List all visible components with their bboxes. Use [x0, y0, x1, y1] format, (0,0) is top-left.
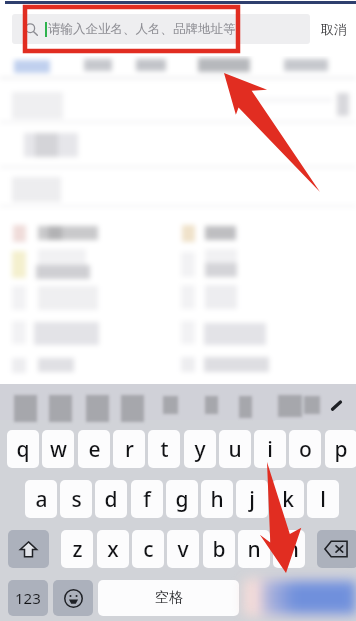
button[interactable]: 空格 — [98, 580, 239, 616]
button[interactable]: r — [113, 430, 145, 468]
staticText: u — [228, 435, 242, 464]
staticText: e — [88, 435, 101, 464]
staticText: n — [247, 535, 261, 564]
button[interactable]: f — [131, 480, 163, 518]
button[interactable]: i — [254, 430, 286, 468]
staticText: q — [16, 435, 30, 464]
button[interactable]: w — [42, 430, 74, 468]
staticText: m — [279, 535, 299, 564]
staticText: p — [334, 435, 348, 464]
staticText: g — [175, 485, 189, 514]
staticText: k — [282, 485, 294, 514]
staticText: w — [50, 435, 67, 464]
button[interactable]: p — [325, 430, 356, 468]
staticText: v — [177, 535, 189, 564]
staticText: 请输入企业名、人名、品牌地址等 — [48, 21, 236, 37]
staticText: j — [249, 485, 255, 514]
button[interactable]: k — [272, 480, 304, 518]
button[interactable]: e — [78, 430, 110, 468]
button[interactable]: a — [25, 480, 57, 518]
staticText: y — [194, 435, 206, 464]
button[interactable]: o — [289, 430, 321, 468]
staticText: c — [143, 535, 154, 564]
staticText: t — [160, 435, 169, 464]
staticText: i — [267, 435, 273, 464]
staticText: h — [210, 485, 224, 514]
button[interactable]: x — [97, 530, 129, 568]
button[interactable]: 取消 — [318, 18, 350, 40]
button[interactable]: Emoji — [53, 580, 93, 616]
button[interactable]: Backspace — [317, 530, 356, 568]
staticText: z — [72, 535, 83, 564]
button[interactable]: j — [236, 480, 268, 518]
staticText: a — [35, 485, 48, 514]
staticText: o — [299, 435, 312, 464]
button[interactable]: s — [60, 480, 92, 518]
button[interactable]: Shift — [8, 530, 49, 568]
button[interactable]: z — [61, 530, 93, 568]
button[interactable]: t — [148, 430, 180, 468]
button[interactable]: 123 — [8, 580, 48, 616]
staticText: b — [212, 535, 226, 564]
button[interactable]: c — [132, 530, 164, 568]
button[interactable]: v — [167, 530, 199, 568]
button[interactable]: d — [95, 480, 127, 518]
staticText: x — [107, 535, 119, 564]
staticText: 123 — [15, 588, 41, 608]
button[interactable]: q — [7, 430, 39, 468]
button[interactable]: g — [166, 480, 198, 518]
staticText: l — [320, 485, 326, 514]
staticText: 空格 — [155, 589, 183, 607]
staticText: 取消 — [321, 21, 347, 37]
button[interactable]: Search — [244, 580, 356, 616]
staticText: f — [143, 485, 151, 514]
button[interactable]: y — [184, 430, 216, 468]
button[interactable]: m — [273, 530, 305, 568]
staticText: r — [125, 435, 134, 464]
button[interactable]: l — [307, 480, 339, 518]
button[interactable]: b — [203, 530, 235, 568]
staticText: s — [71, 485, 82, 514]
staticText: d — [104, 485, 118, 514]
button[interactable]: n — [238, 530, 270, 568]
button[interactable]: u — [219, 430, 251, 468]
button[interactable]: h — [201, 480, 233, 518]
button[interactable]: 请输入企业名、人名、品牌地址等 — [12, 14, 310, 44]
